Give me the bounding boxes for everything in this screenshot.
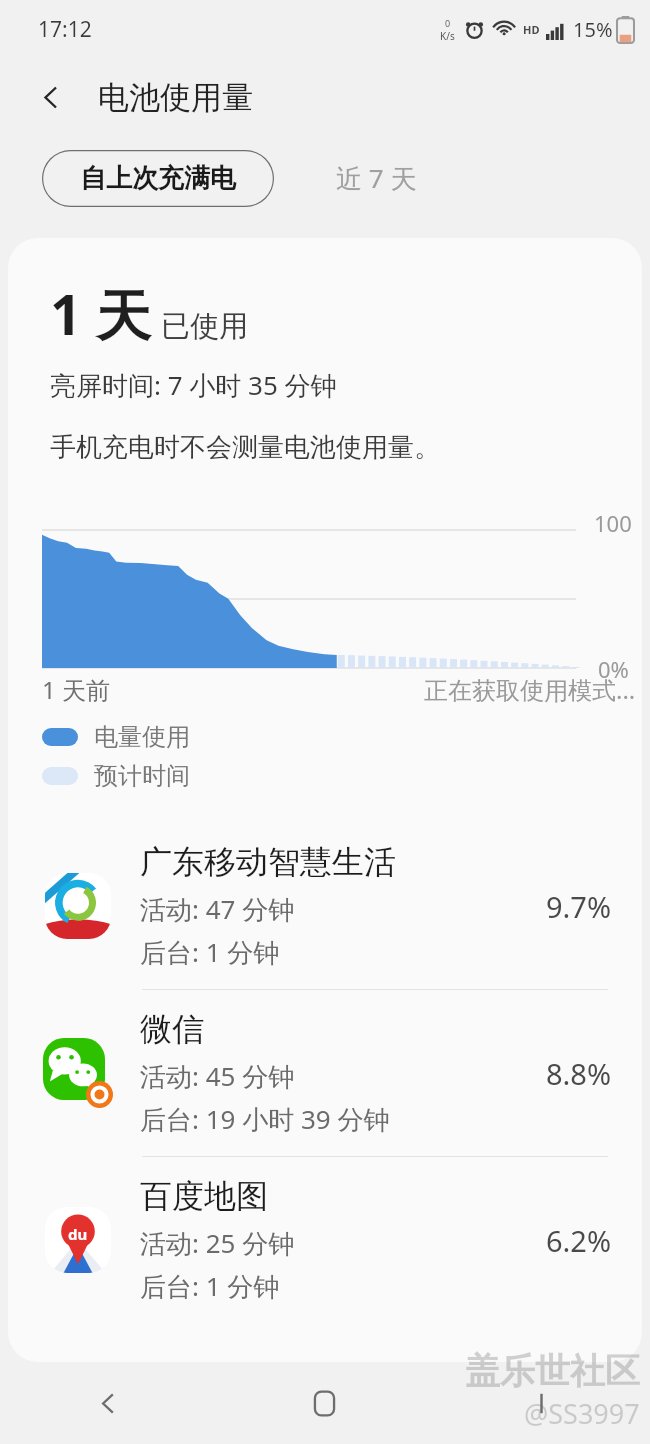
staticText: 0%: [598, 654, 629, 684]
button[interactable]: Back: [0, 1362, 216, 1444]
staticText: 手机充电时不会测量电池使用量。: [50, 431, 440, 464]
staticText: 100: [594, 508, 632, 538]
staticText: 亮屏时间: 7 小时 35 分钟: [50, 367, 337, 403]
staticText: 预计时间: [94, 761, 190, 791]
staticText: 电池使用量: [98, 78, 253, 117]
staticText: 近 7 天: [336, 160, 417, 196]
staticText: 6.2%: [546, 1221, 612, 1260]
staticText: 1 天: [50, 276, 151, 351]
staticText: 正在获取使用模式...: [424, 673, 636, 706]
button[interactable]: Home: [216, 1362, 433, 1444]
staticText: 微信: [140, 1009, 204, 1049]
staticText: 广东移动智慧生活: [140, 842, 396, 882]
staticText: 后台: 1 分钟: [140, 1268, 280, 1304]
button[interactable]: 自上次充满电: [42, 150, 274, 207]
staticText: HD: [523, 22, 540, 37]
staticText: 活动: 47 分钟: [140, 891, 295, 927]
staticText: 后台: 1 分钟: [140, 934, 280, 970]
staticText: 后台: 19 小时 39 分钟: [140, 1101, 390, 1137]
button[interactable]: Back: [26, 72, 76, 122]
button[interactable]: 广东移动智慧生活: [8, 823, 642, 989]
staticText: 已使用: [161, 308, 248, 345]
staticText: @SS3997: [524, 1395, 640, 1432]
staticText: du: [68, 1224, 88, 1244]
staticText: 自上次充满电: [80, 162, 236, 195]
staticText: 9.7%: [546, 887, 612, 926]
staticText: 活动: 25 分钟: [140, 1225, 295, 1261]
staticText: 15%: [573, 16, 613, 43]
button[interactable]: 近 7 天: [326, 152, 427, 204]
staticText: 盖乐世社区: [465, 1349, 640, 1393]
button[interactable]: 微信: [8, 990, 642, 1156]
staticText: 电量使用: [94, 722, 190, 752]
staticText: 1 天前: [42, 673, 110, 706]
staticText: 活动: 45 分钟: [140, 1058, 295, 1094]
staticText: 0: [445, 17, 451, 29]
staticText: 8.8%: [546, 1054, 612, 1093]
button[interactable]: Recents: [433, 1362, 650, 1444]
button[interactable]: du: [8, 1157, 642, 1323]
staticText: 17:12: [38, 15, 92, 44]
staticText: 百度地图: [140, 1176, 268, 1216]
staticText: K/s: [440, 29, 455, 43]
